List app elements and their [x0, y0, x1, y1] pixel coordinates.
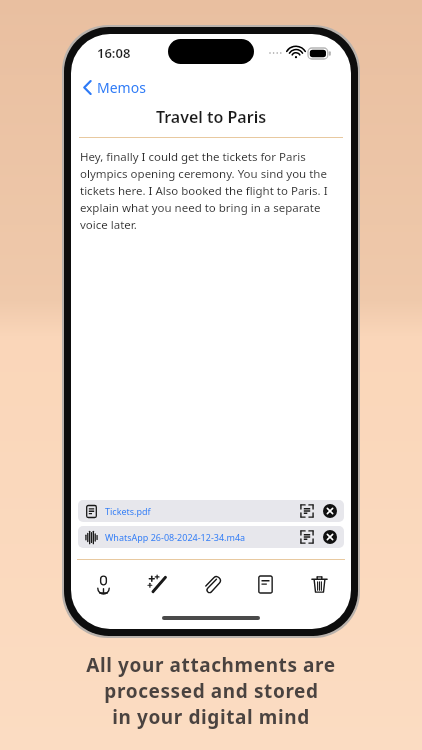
button[interactable]: Remove attachment: [323, 504, 337, 518]
staticText: processed and stored: [104, 678, 319, 704]
button[interactable]: Notes: [248, 567, 282, 601]
staticText: in your digital mind: [112, 704, 310, 730]
button[interactable]: Tickets.pdf: [78, 500, 344, 522]
staticText: Hey, finally I could get the tickets for…: [80, 149, 342, 233]
button[interactable]: WhatsApp 26-08-2024-12-34.m4a: [78, 526, 344, 548]
button[interactable]: Delete: [302, 567, 336, 601]
staticText: Memos: [97, 78, 146, 97]
staticText: WhatsApp 26-08-2024-12-34.m4a: [105, 531, 246, 543]
button[interactable]: Scan text: [299, 529, 315, 545]
button[interactable]: Memos: [71, 71, 160, 102]
button[interactable]: Magic enhance: [140, 567, 174, 601]
button[interactable]: Remove attachment: [323, 530, 337, 544]
staticText: Travel to Paris: [71, 106, 351, 128]
staticText: 16:08: [97, 44, 131, 62]
staticText: All your attachments are: [86, 652, 336, 678]
button[interactable]: Scan text: [299, 503, 315, 519]
button[interactable]: Attach file: [194, 567, 228, 601]
staticText: Tickets.pdf: [105, 505, 151, 517]
button[interactable]: Record voice: [86, 567, 120, 601]
